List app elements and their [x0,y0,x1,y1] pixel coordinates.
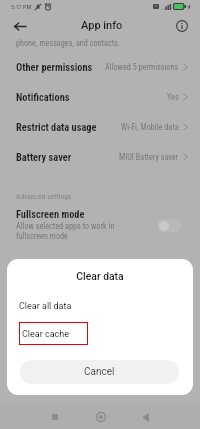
staticText: Clear data [7,270,193,282]
button[interactable]: Battery saver [16,142,188,172]
button[interactable]: Notifications [16,82,188,112]
staticText: MIUI Battery saver [119,152,179,162]
button[interactable]: Clear cache [7,323,193,346]
button[interactable]: Clear all data [7,295,193,317]
staticText: Yes [167,92,179,102]
staticText: Clear cache [22,329,70,340]
staticText: Allow selected apps to work in fullscree… [16,221,115,241]
staticText: Wi-Fi, Mobile data [121,122,179,132]
button[interactable]: Fullscreen mode toggle [157,219,181,232]
button[interactable]: Fullscreen mode [16,208,186,241]
staticText: Allowed 5 permissions [105,62,179,72]
button[interactable]: Home [90,406,112,428]
staticText: Notifications [16,91,70,103]
staticText: Cancel [84,366,115,378]
button[interactable]: Cancel [20,360,179,384]
button[interactable]: Back [134,406,156,428]
button[interactable]: Recent apps [44,406,66,428]
button[interactable]: Back [9,15,31,37]
staticText: Other permissions [16,61,93,73]
button[interactable]: App details [172,16,192,36]
staticText: App info [81,19,123,32]
staticText: Clear all data [19,301,72,312]
staticText: Advanced settings [16,192,72,201]
staticText: Battery saver [16,151,72,163]
button[interactable]: Other permissions [16,52,188,82]
staticText: phone, messages, and contacts. [16,38,121,48]
staticText: 5:17 PM [11,3,32,10]
staticText: Fullscreen mode [16,208,85,220]
button[interactable]: Restrict data usage [16,112,188,142]
staticText: Restrict data usage [16,121,97,133]
